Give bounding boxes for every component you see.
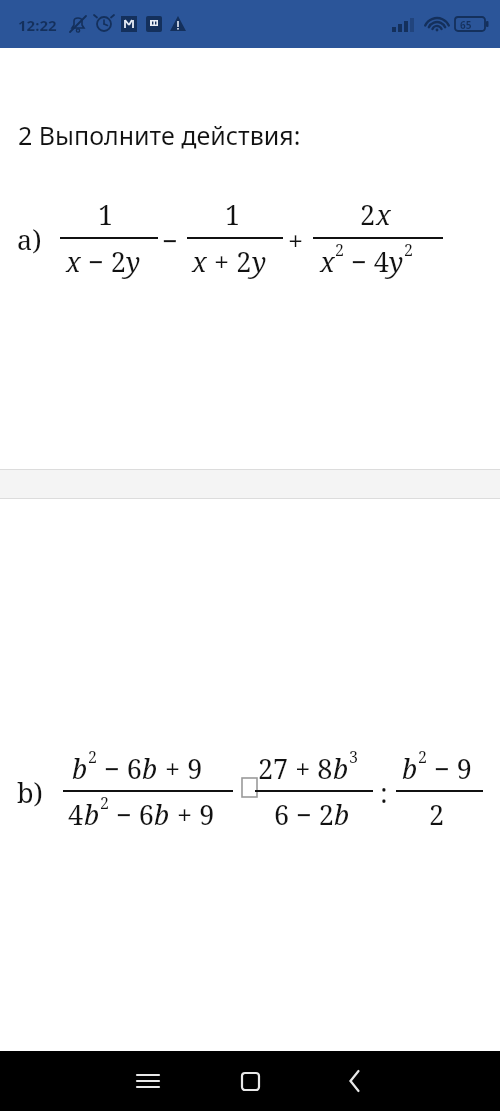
staticText: 6 − 2 (274, 796, 334, 833)
staticText: x (376, 196, 391, 233)
staticText: b (402, 750, 418, 787)
staticText: 4 (68, 796, 84, 833)
button[interactable]: Back (329, 1063, 381, 1099)
staticText: b (333, 750, 349, 787)
staticText: x (320, 243, 335, 280)
staticText: x (192, 243, 207, 280)
staticText: 65 (460, 18, 472, 32)
staticText: − 2 (81, 243, 126, 280)
staticText: + 9 (158, 750, 203, 787)
staticText: b (154, 796, 170, 833)
staticText: + (288, 222, 304, 259)
staticText: + 2 (207, 243, 252, 280)
staticText: 2 (100, 792, 109, 814)
staticText: − 9 (427, 750, 472, 787)
button[interactable]: Recent apps (122, 1063, 174, 1099)
staticText: + 9 (170, 796, 215, 833)
staticText: 2 (88, 746, 97, 768)
staticText: 2 (360, 196, 376, 233)
staticText: b) (17, 774, 43, 811)
staticText: 1 (98, 196, 114, 233)
staticText: 2 (335, 239, 344, 261)
staticText: 2 (404, 239, 413, 261)
staticText: y (389, 243, 404, 280)
staticText: 1 (225, 196, 241, 233)
staticText: 2 Выполните действия: (18, 118, 301, 152)
staticText: b (84, 796, 100, 833)
staticText: 3 (349, 746, 358, 768)
staticText: : (380, 774, 388, 811)
staticText: b (334, 796, 350, 833)
staticText: x (66, 243, 81, 280)
staticText: b (142, 750, 158, 787)
staticText: 27 + 8 (258, 750, 333, 787)
staticText: y (252, 243, 267, 280)
staticText: a) (17, 221, 42, 258)
staticText: 2 (429, 796, 445, 833)
staticText: 2 (418, 746, 427, 768)
staticText: − 6 (109, 796, 154, 833)
staticText: b (72, 750, 88, 787)
staticText: 12:22 (18, 15, 57, 35)
staticText: − (162, 222, 178, 259)
staticText: y (126, 243, 141, 280)
staticText: − 6 (97, 750, 142, 787)
staticText: − 4 (344, 243, 389, 280)
button[interactable]: Home (224, 1063, 276, 1099)
